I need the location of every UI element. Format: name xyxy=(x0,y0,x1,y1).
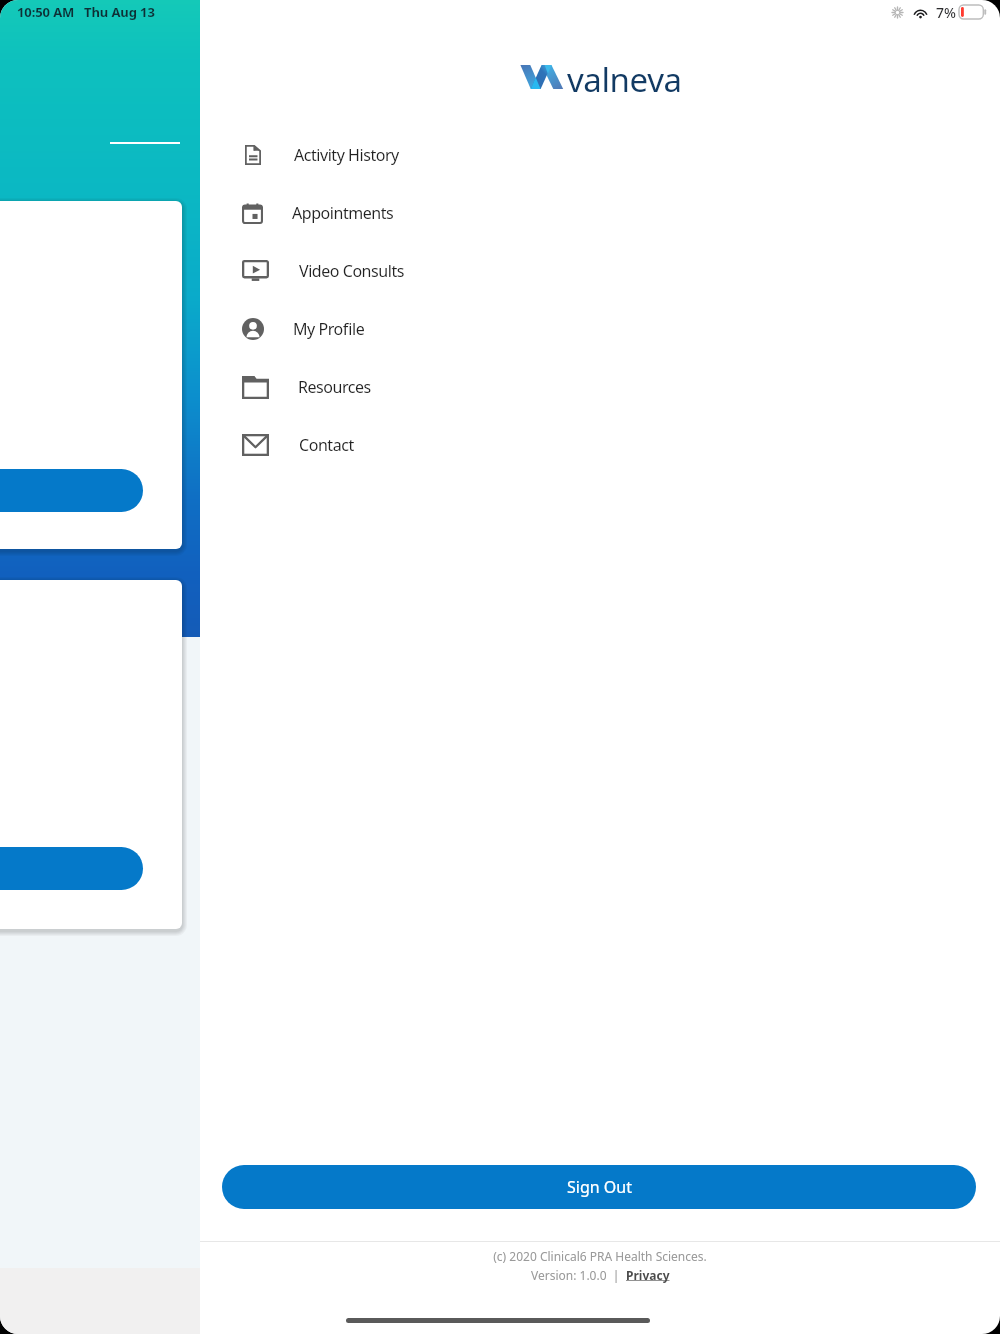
staticText: Video Consults xyxy=(299,260,404,282)
staticText: Appointments xyxy=(292,202,394,224)
button[interactable]: Appointments xyxy=(200,184,1000,242)
staticText: Contact xyxy=(299,434,354,456)
staticText: My Profile xyxy=(293,318,365,340)
button[interactable]: Video Consults xyxy=(200,242,1000,300)
button[interactable]: Resources xyxy=(200,358,1000,416)
button[interactable]: Sign Out xyxy=(222,1165,976,1209)
staticText: Resources xyxy=(298,376,371,398)
other: Wi-Fi xyxy=(912,6,929,18)
button[interactable]: Privacy xyxy=(626,1267,670,1283)
button[interactable]: My Profile xyxy=(200,300,1000,358)
other: Syncing xyxy=(892,7,903,18)
staticText: Activity History xyxy=(294,144,399,166)
other: Valneva logo xyxy=(519,65,566,89)
staticText: Sign Out xyxy=(567,1176,632,1198)
button[interactable]: Activity History xyxy=(200,126,1000,184)
staticText: Version: 1.0.0 | xyxy=(531,1267,626,1283)
staticText: valneva xyxy=(567,57,682,102)
staticText: 7% xyxy=(936,3,956,22)
staticText: 10:50 AM Thu Aug 13 xyxy=(17,3,155,21)
button[interactable]: Contact xyxy=(200,416,1000,474)
staticText: (c) 2020 Clinical6 PRA Health Sciences. xyxy=(200,1248,1000,1264)
other: Battery 7 percent xyxy=(959,5,986,19)
